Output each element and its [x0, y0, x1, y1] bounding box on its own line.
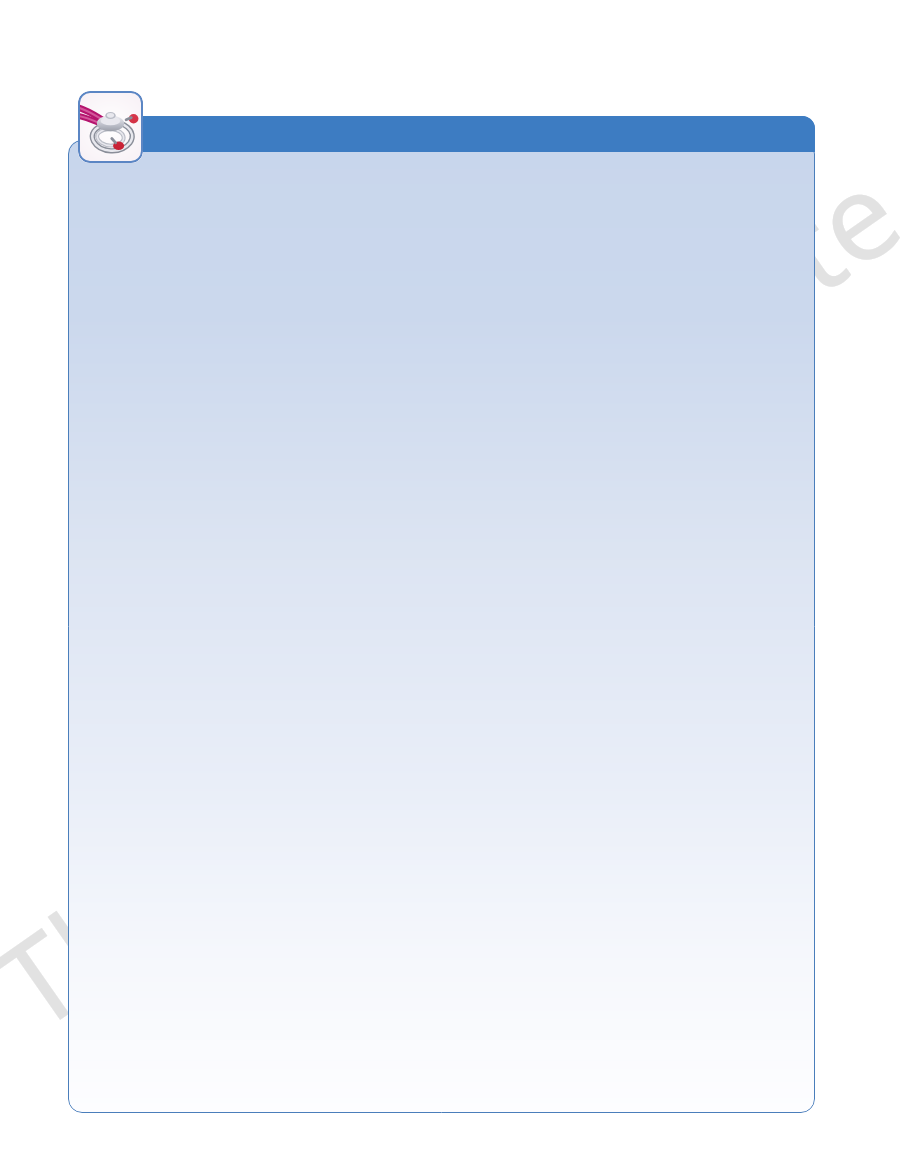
button[interactable]	[140, 116, 815, 152]
button[interactable]	[68, 140, 815, 1113]
button[interactable]: Stethoscope	[78, 91, 143, 163]
